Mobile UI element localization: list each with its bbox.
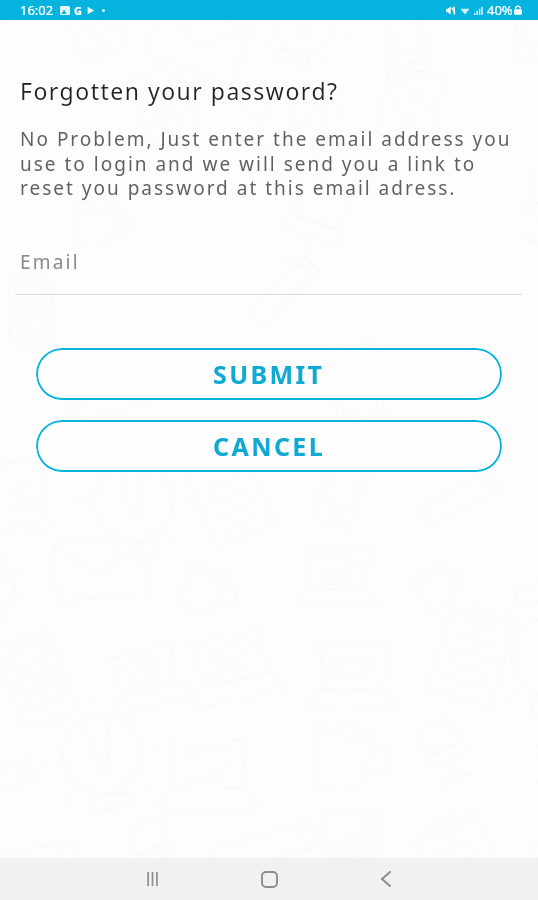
button[interactable]: SUBMIT bbox=[36, 348, 502, 400]
staticText: Email bbox=[20, 249, 80, 275]
staticText: SUBMIT bbox=[213, 357, 325, 391]
button[interactable]: Back bbox=[358, 858, 414, 900]
button[interactable]: Recent apps bbox=[124, 858, 180, 900]
staticText: G bbox=[74, 3, 82, 18]
staticText: No Problem, Just enter the email address… bbox=[20, 126, 516, 201]
staticText: Forgotten your password? bbox=[20, 75, 339, 106]
button[interactable]: Home bbox=[241, 858, 297, 900]
staticText: CANCEL bbox=[213, 429, 326, 463]
button[interactable]: Email bbox=[16, 240, 522, 295]
staticText: 40% bbox=[487, 1, 513, 19]
staticText: 16:02 bbox=[20, 1, 54, 19]
button[interactable]: CANCEL bbox=[36, 420, 502, 472]
